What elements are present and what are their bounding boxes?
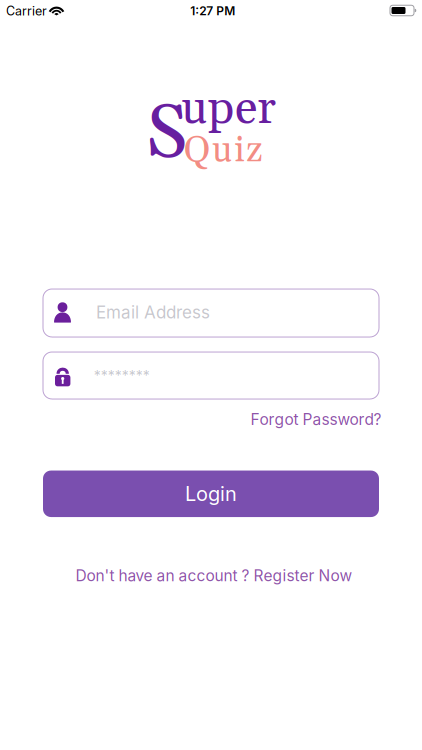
button[interactable]: Login bbox=[43, 471, 379, 517]
staticText: Forgot Password? bbox=[250, 410, 381, 429]
staticText: Email Address bbox=[43, 298, 194, 328]
button[interactable]: Don't have an account ? Register Now bbox=[75, 566, 352, 585]
staticText: ******** bbox=[43, 360, 139, 390]
textField[interactable]: Email Address bbox=[43, 298, 379, 328]
staticText: Login bbox=[185, 482, 237, 506]
staticText: Email Address bbox=[96, 302, 210, 323]
staticText: Carrier bbox=[6, 3, 47, 18]
staticText: Don't have an account ? Register Now bbox=[75, 566, 352, 585]
staticText: ******** bbox=[94, 367, 150, 384]
secureTextField[interactable]: ******** bbox=[43, 360, 379, 390]
staticText: S bbox=[146, 88, 188, 182]
staticText: Quiz bbox=[184, 128, 262, 174]
staticText: 1:27 PM bbox=[190, 4, 235, 18]
staticText: uper bbox=[181, 80, 276, 139]
button[interactable]: Forgot Password? bbox=[250, 410, 381, 429]
